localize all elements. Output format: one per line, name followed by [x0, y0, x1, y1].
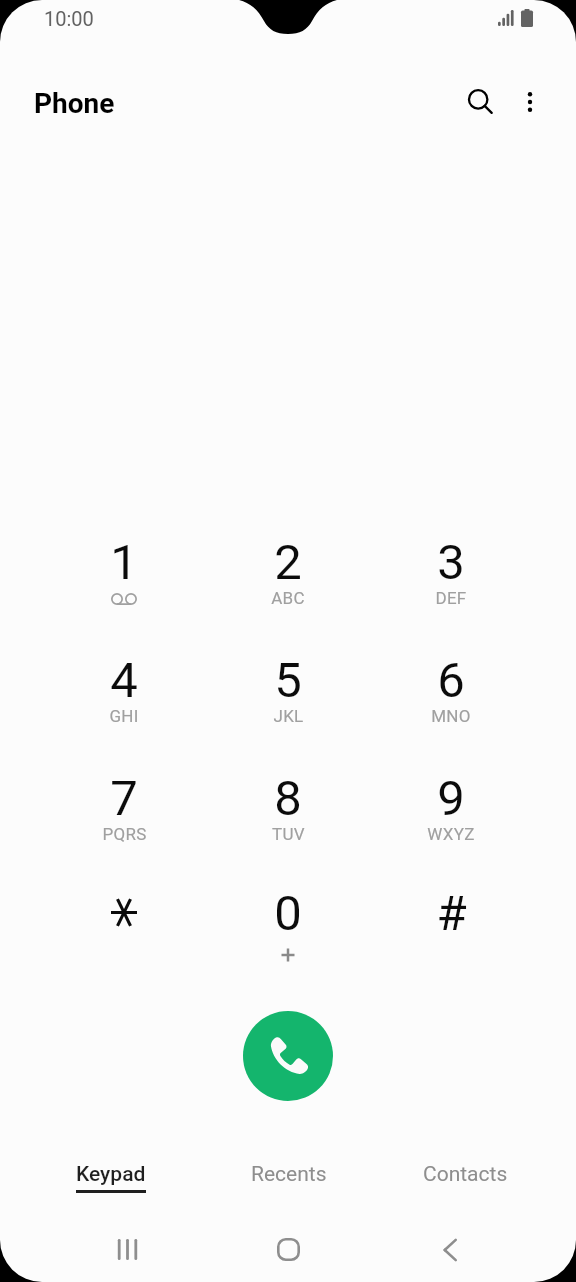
button[interactable]: Back: [369, 1217, 530, 1282]
button[interactable]: More options: [506, 78, 554, 126]
staticText: 2: [274, 534, 302, 591]
staticText: MNO: [431, 706, 471, 726]
button[interactable]: 1: [49, 523, 199, 635]
staticText: TUV: [272, 824, 305, 844]
button[interactable]: 0: [213, 874, 363, 986]
button[interactable]: 3: [376, 523, 526, 635]
staticText: 0: [274, 885, 302, 942]
staticText: 9: [437, 770, 465, 827]
button[interactable]: 2: [213, 523, 363, 635]
staticText: 8: [274, 770, 302, 827]
staticText: WXYZ: [427, 824, 475, 844]
button[interactable]: Home: [208, 1217, 369, 1282]
staticText: 4: [110, 652, 138, 709]
button[interactable]: 8: [213, 759, 363, 871]
staticText: 1: [110, 534, 138, 591]
button[interactable]: 4: [49, 641, 199, 753]
button[interactable]: Contacts: [377, 1149, 554, 1205]
staticText: 6: [437, 652, 465, 709]
staticText: 5: [274, 652, 302, 709]
button[interactable]: #: [376, 874, 526, 986]
button[interactable]: Keypad: [22, 1149, 200, 1205]
staticText: DEF: [435, 588, 467, 608]
staticText: 10:00: [44, 7, 94, 30]
staticText: #: [436, 885, 467, 942]
button[interactable]: Search: [456, 78, 504, 126]
button[interactable]: Recent apps: [46, 1217, 208, 1282]
staticText: Contacts: [423, 1162, 508, 1187]
staticText: Phone: [34, 87, 115, 120]
staticText: 7: [110, 770, 138, 827]
staticText: PQRS: [102, 824, 147, 844]
button[interactable]: 5: [213, 641, 363, 753]
button[interactable]: Call: [243, 1011, 333, 1101]
staticText: Recents: [251, 1162, 327, 1187]
staticText: 3: [437, 534, 465, 591]
staticText: JKL: [273, 706, 304, 726]
staticText: ABC: [271, 588, 305, 608]
button[interactable]: [49, 874, 199, 986]
button[interactable]: 6: [376, 641, 526, 753]
button[interactable]: 9: [376, 759, 526, 871]
button[interactable]: Recents: [200, 1149, 377, 1205]
button[interactable]: 7: [49, 759, 199, 871]
staticText: GHI: [109, 706, 139, 726]
staticText: Keypad: [76, 1162, 146, 1187]
